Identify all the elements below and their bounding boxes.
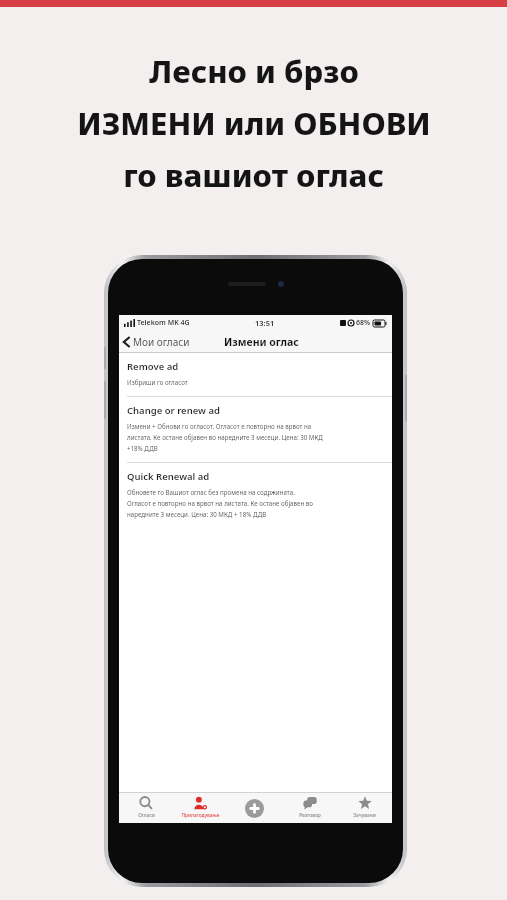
staticText: Обновете го Вашиот оглас без промена на … [127, 488, 295, 496]
button[interactable]: Change or renew ad [119, 397, 392, 462]
button[interactable]: Remove ad [119, 353, 392, 396]
button[interactable]: Quick Renewal ad [119, 463, 392, 528]
staticText: Change or renew ad [127, 404, 220, 417]
staticText: Избриши го огласот [127, 378, 188, 386]
staticText: Лесно и брзо [149, 50, 359, 92]
button[interactable]: Додади оглас [227, 793, 282, 823]
staticText: Прилагодување [181, 812, 220, 819]
staticText: Мои огласи [133, 335, 190, 349]
staticText: Remove ad [127, 360, 179, 373]
staticText: Разговор [299, 812, 321, 819]
button[interactable]: Мои огласи [119, 333, 196, 351]
staticText: Telekom MK 4G [137, 318, 190, 328]
staticText: Огласот е повторно на врвот на листата. … [127, 499, 313, 507]
button[interactable]: Прилагодување [173, 793, 227, 823]
staticText: Огласи [138, 812, 155, 819]
staticText: листата. Ке остане објавен во наредните … [127, 433, 323, 441]
button[interactable]: Зачувани [337, 793, 392, 823]
staticText: наредните 3 месеци. Цена: 30 МКД + 18% Д… [127, 510, 267, 518]
button[interactable]: Разговор [282, 793, 337, 823]
staticText: 68% [356, 318, 371, 328]
staticText: го вашиот оглас [123, 154, 384, 196]
staticText: Зачувани [353, 812, 376, 819]
staticText: ИЗМЕНИ или ОБНОВИ [77, 102, 431, 144]
staticText: Измени + Обнови го огласот. Огласот е по… [127, 422, 312, 430]
staticText: 13:51 [255, 318, 275, 328]
staticText: Quick Renewal ad [127, 470, 210, 483]
button[interactable]: Огласи [119, 793, 173, 823]
staticText: Измени оглас [224, 335, 299, 349]
staticText: +18% ДДВ [127, 444, 158, 452]
